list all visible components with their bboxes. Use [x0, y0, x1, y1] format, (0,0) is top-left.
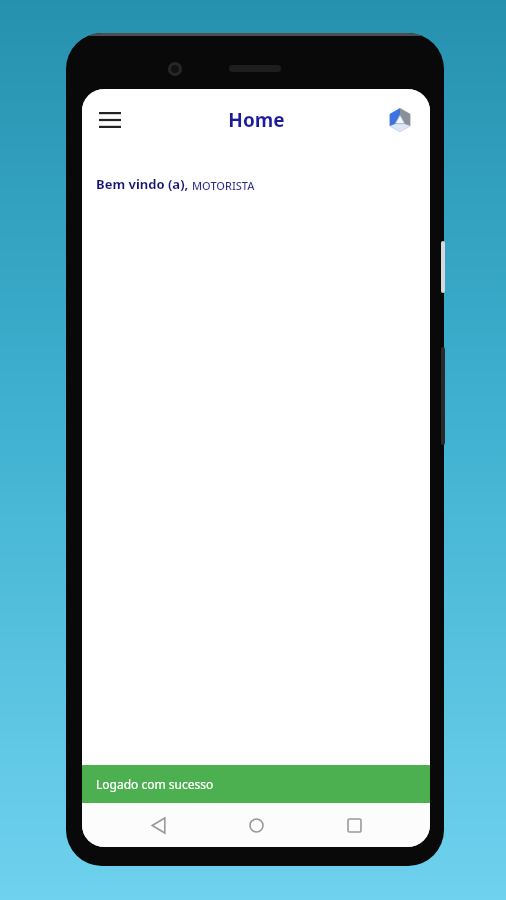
- button[interactable]: Recent apps: [332, 803, 376, 847]
- button[interactable]: Home: [234, 803, 278, 847]
- staticText: Bem vindo (a),: [96, 175, 192, 193]
- button[interactable]: Back: [136, 803, 180, 847]
- button[interactable]: Open navigation menu: [86, 96, 134, 144]
- button[interactable]: Logado com sucesso: [82, 765, 430, 803]
- staticText: MOTORISTA: [192, 178, 255, 193]
- staticText: Home: [228, 107, 285, 133]
- button[interactable]: App logo: [380, 100, 420, 140]
- staticText: Logado com sucesso: [96, 776, 214, 792]
